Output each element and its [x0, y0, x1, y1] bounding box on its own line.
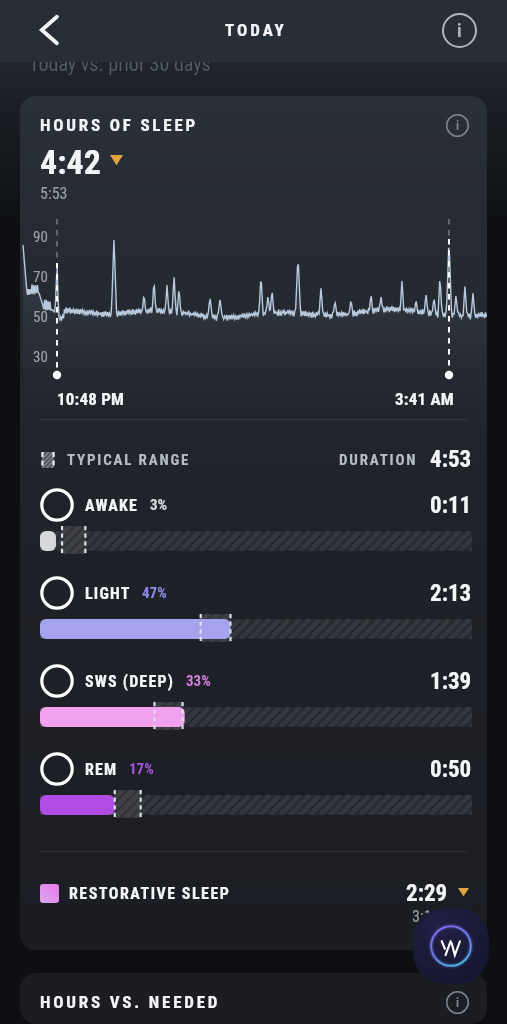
button[interactable]: RESTORATIVE SLEEP: [40, 880, 469, 907]
staticText: DURATION: [339, 451, 418, 469]
staticText: HOURS VS. NEEDED: [40, 992, 221, 1012]
staticText: 70: [33, 268, 56, 286]
staticText: 0:11: [430, 492, 472, 519]
staticText: TODAY: [225, 20, 287, 40]
button[interactable]: Back: [26, 7, 72, 53]
staticText: 2:13: [430, 580, 472, 607]
staticText: 3:11: [412, 907, 440, 926]
staticText: RESTORATIVE SLEEP: [69, 884, 231, 903]
staticText: 4:42: [40, 142, 101, 182]
staticText: 50: [33, 308, 56, 326]
staticText: 3:41 AM: [395, 389, 454, 409]
staticText: i: [456, 119, 460, 133]
button[interactable]: LIGHT: [20, 575, 487, 663]
staticText: LIGHT: [85, 584, 131, 603]
staticText: 4:53: [430, 446, 472, 473]
staticText: 1:39: [430, 668, 472, 695]
staticText: 47%: [142, 584, 167, 602]
staticText: 17%: [129, 760, 154, 778]
staticText: HOURS OF SLEEP: [40, 115, 199, 135]
staticText: 30: [33, 348, 56, 366]
button[interactable]: Information: [440, 985, 474, 1019]
button[interactable]: Whoop Coach: [413, 908, 489, 984]
staticText: 90: [33, 228, 56, 246]
staticText: REM: [85, 760, 118, 779]
staticText: 5:53: [40, 184, 68, 203]
staticText: i: [457, 20, 462, 41]
staticText: 2:29: [406, 880, 448, 907]
staticText: AWAKE: [85, 496, 139, 515]
staticText: 0:50: [430, 756, 472, 783]
staticText: Today vs. prior 30 days: [29, 52, 211, 75]
button[interactable]: REM: [20, 751, 487, 839]
staticText: TYPICAL RANGE: [67, 451, 191, 469]
staticText: SWS (DEEP): [85, 672, 175, 691]
staticText: i: [456, 996, 460, 1010]
button[interactable]: AWAKE: [20, 487, 487, 575]
button[interactable]: SWS (DEEP): [20, 663, 487, 751]
staticText: 33%: [186, 672, 211, 690]
button[interactable]: Information: [439, 10, 479, 50]
button[interactable]: Information: [440, 108, 474, 142]
staticText: 3%: [150, 496, 168, 514]
staticText: 10:48 PM: [57, 389, 125, 409]
